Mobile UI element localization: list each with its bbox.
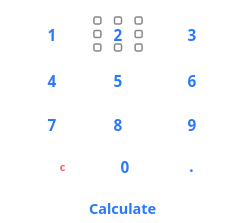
button[interactable]: 9 (161, 103, 223, 147)
button[interactable]: 3 (161, 13, 223, 57)
button[interactable]: 1 (21, 13, 83, 57)
staticText: 9 (187, 115, 197, 136)
button[interactable]: 0 (94, 145, 156, 189)
button[interactable]: Calculate (75, 192, 169, 223)
button[interactable]: . (160, 144, 222, 188)
button[interactable]: c (31, 145, 93, 189)
staticText: Calculate (89, 199, 156, 218)
button[interactable]: 2 (87, 13, 149, 57)
staticText: 1 (47, 25, 57, 46)
staticText: 7 (47, 115, 57, 136)
staticText: 5 (113, 71, 123, 92)
staticText: 6 (187, 71, 197, 92)
staticText: 8 (113, 115, 123, 136)
staticText: c (60, 160, 65, 175)
staticText: 0 (120, 157, 130, 178)
button[interactable]: 6 (161, 59, 223, 103)
button[interactable]: 7 (21, 103, 83, 147)
staticText: . (189, 156, 194, 177)
other: Focused key indicator (91, 14, 145, 54)
staticText: 3 (187, 25, 197, 46)
staticText: 4 (47, 71, 57, 92)
staticText: 2 (113, 25, 123, 46)
button[interactable]: 8 (87, 103, 149, 147)
button[interactable]: 4 (21, 59, 83, 103)
button[interactable]: 5 (87, 59, 149, 103)
